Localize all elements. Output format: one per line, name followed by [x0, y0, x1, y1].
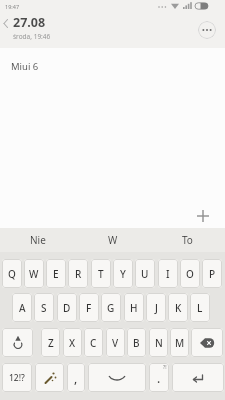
staticText: środa, 19:46 — [13, 32, 51, 41]
button[interactable]: , — [67, 363, 85, 392]
button[interactable]: T — [91, 259, 111, 288]
staticText: K — [175, 301, 182, 315]
button[interactable]: J — [146, 293, 166, 322]
staticText: R — [75, 267, 82, 281]
button[interactable]: R — [68, 259, 88, 288]
button[interactable] — [2, 18, 10, 30]
button[interactable] — [193, 206, 213, 226]
staticText: 12!? — [9, 372, 25, 384]
button[interactable]: C — [84, 328, 103, 357]
staticText: Y — [120, 267, 126, 281]
staticText: . — [157, 370, 161, 386]
staticText: D — [63, 301, 71, 315]
staticText: Nie — [30, 233, 46, 247]
button[interactable]: V — [106, 328, 125, 357]
button[interactable]: I — [158, 259, 178, 288]
staticText: H — [130, 301, 138, 315]
button[interactable]: F — [79, 293, 99, 322]
staticText: W — [29, 267, 39, 281]
button[interactable] — [88, 363, 146, 392]
button[interactable] — [2, 328, 33, 357]
staticText: L — [197, 301, 203, 315]
staticText: M — [175, 336, 185, 350]
button[interactable]: X — [63, 328, 82, 357]
staticText: S — [41, 301, 47, 315]
staticText: C — [90, 336, 97, 350]
staticText: 19:47 — [5, 3, 20, 10]
button[interactable]: H — [124, 293, 144, 322]
button[interactable]: Nie — [0, 228, 75, 252]
staticText: , — [74, 370, 78, 386]
button[interactable] — [198, 21, 216, 39]
button[interactable]: D — [57, 293, 77, 322]
button[interactable]: O — [180, 259, 200, 288]
button[interactable]: 12!? — [2, 363, 32, 392]
staticText: ?! — [163, 364, 167, 371]
staticText: X — [69, 336, 76, 350]
button[interactable]: . — [149, 363, 169, 392]
staticText: G — [107, 301, 115, 315]
staticText: F — [86, 301, 92, 315]
button[interactable] — [191, 328, 223, 357]
button[interactable] — [172, 363, 224, 392]
staticText: N — [155, 336, 163, 350]
button[interactable]: G — [101, 293, 121, 322]
staticText: U — [141, 267, 149, 281]
staticText: V — [112, 336, 119, 350]
button[interactable]: A — [12, 293, 32, 322]
staticText: A — [19, 301, 26, 315]
staticText: Miui 6 — [11, 60, 39, 73]
staticText: T — [98, 267, 104, 281]
button[interactable]: E — [46, 259, 66, 288]
staticText: Q — [8, 267, 16, 281]
staticText: 27.08 — [13, 14, 46, 31]
staticText: E — [53, 267, 59, 281]
button[interactable]: U — [135, 259, 155, 288]
staticText: W — [108, 233, 118, 247]
button[interactable]: To — [150, 228, 225, 252]
staticText: B — [133, 336, 140, 350]
button[interactable]: N — [149, 328, 168, 357]
button[interactable]: Y — [113, 259, 133, 288]
button[interactable]: W — [24, 259, 44, 288]
staticText: Z — [48, 336, 54, 350]
button[interactable] — [35, 363, 64, 392]
button[interactable]: L — [190, 293, 210, 322]
button[interactable]: M — [170, 328, 189, 357]
button[interactable]: Q — [2, 259, 22, 288]
staticText: P — [209, 267, 216, 281]
staticText: To — [182, 233, 193, 247]
button[interactable]: W — [75, 228, 150, 252]
button[interactable]: K — [168, 293, 188, 322]
button[interactable]: P — [202, 259, 222, 288]
button[interactable]: S — [34, 293, 54, 322]
button[interactable]: B — [127, 328, 146, 357]
button[interactable]: Z — [41, 328, 60, 357]
staticText: J — [155, 301, 158, 315]
staticText: O — [186, 267, 194, 281]
staticText: I — [166, 267, 170, 281]
